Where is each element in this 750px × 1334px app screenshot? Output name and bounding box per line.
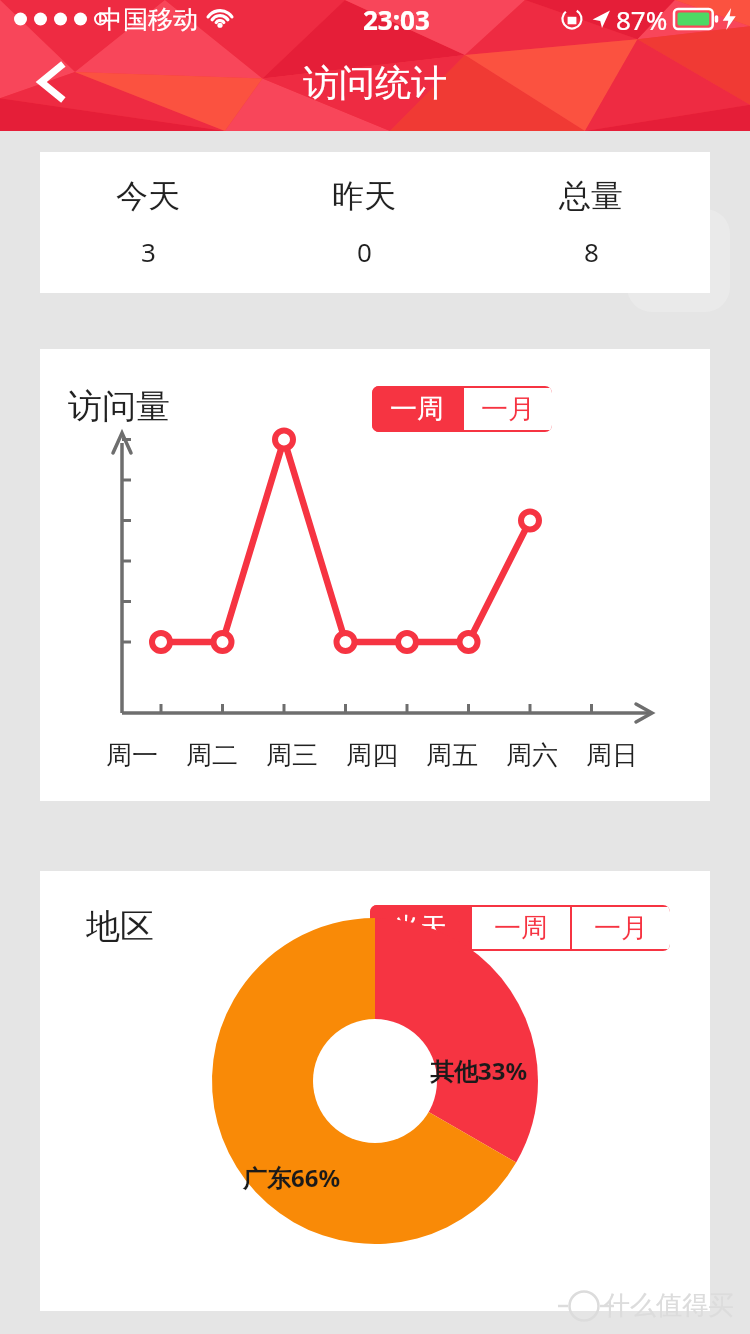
staticText: 周六 (506, 739, 558, 772)
staticText: 地区 (86, 905, 154, 948)
button[interactable]: 今天 (40, 152, 710, 293)
staticText: 广东66% (243, 1161, 341, 1194)
button[interactable]: 当天 (370, 905, 470, 951)
staticText: 中国移动 (98, 4, 198, 35)
button[interactable]: 一月 (464, 388, 552, 430)
staticText: 23:03 (363, 2, 430, 37)
staticText: 访问量 (68, 385, 170, 428)
staticText: 什么值得买 (604, 1289, 734, 1322)
staticText: 周日 (586, 739, 638, 772)
staticText: 周三 (266, 739, 318, 772)
staticText: 昨天 (332, 176, 396, 216)
staticText: 0 (357, 234, 372, 269)
staticText: 周一 (106, 739, 158, 772)
staticText: 8 (584, 234, 599, 269)
staticText: 周五 (426, 739, 478, 772)
button[interactable]: 一周 (472, 907, 570, 949)
staticText: 一月 (481, 392, 535, 426)
staticText: 今天 (116, 176, 180, 216)
staticText: 一月 (594, 911, 648, 945)
staticText: 一周 (494, 911, 548, 945)
staticText: 3 (141, 234, 156, 269)
staticText: 周二 (186, 739, 238, 772)
staticText: 87% (616, 2, 668, 37)
staticText: 总量 (559, 176, 623, 216)
staticText: 当天 (393, 911, 447, 945)
button[interactable]: 一周 (372, 386, 462, 432)
staticText: 访问统计 (303, 60, 447, 105)
button[interactable]: Back (22, 52, 82, 112)
staticText: 周四 (346, 739, 398, 772)
staticText: 一周 (390, 392, 444, 426)
button[interactable]: Assistive touch (627, 209, 730, 312)
staticText: 其他33% (430, 1054, 528, 1087)
button[interactable]: 一月 (572, 907, 670, 949)
